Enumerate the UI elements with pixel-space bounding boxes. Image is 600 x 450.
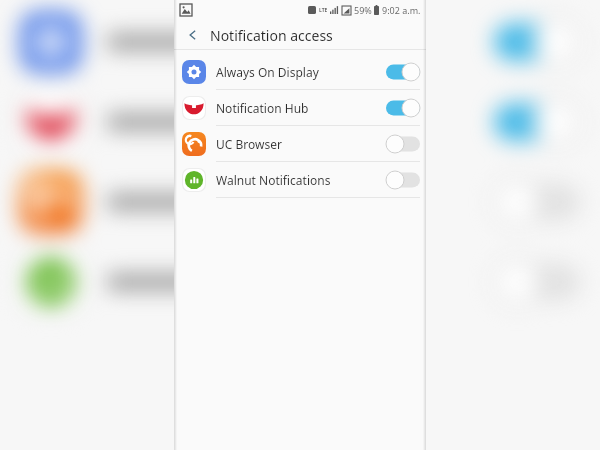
- staticText: Walnut Notifications: [216, 172, 386, 188]
- staticText: LTE: [319, 7, 328, 14]
- staticText: Notification access: [210, 26, 333, 45]
- staticText: UC Browser: [216, 136, 386, 152]
- button[interactable]: Walnut Notifications: [174, 162, 426, 197]
- staticText: 59%: [354, 4, 372, 16]
- button[interactable]: Always On Display: [174, 54, 426, 89]
- button[interactable]: Back: [182, 24, 204, 46]
- button[interactable]: Notification Hub: [174, 90, 426, 125]
- staticText: 9:02 a.m.: [382, 4, 421, 16]
- staticText: Always On Display: [216, 64, 386, 80]
- staticText: Notification Hub: [216, 100, 386, 116]
- button[interactable]: UC Browser: [174, 126, 426, 161]
